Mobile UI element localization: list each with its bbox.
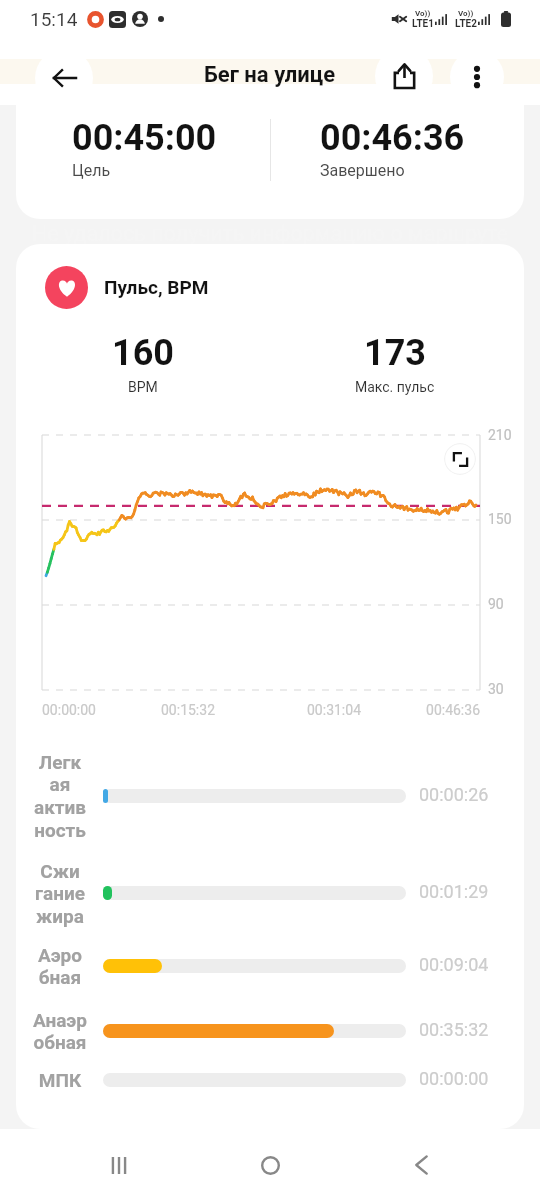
staticText: 00:46:36	[320, 117, 465, 159]
staticText: 00:00:00	[419, 1068, 489, 1089]
staticText: Аэро бная	[30, 944, 90, 988]
button[interactable]: More options	[450, 50, 504, 104]
staticText: Vo))	[415, 9, 431, 18]
staticText: 00:15:32	[148, 702, 228, 718]
staticText: LTE2	[455, 18, 477, 30]
staticText: Анаэр обная	[30, 1009, 90, 1053]
staticText: 00:09:04	[419, 954, 489, 975]
staticText: Цель	[72, 161, 111, 180]
staticText: Завершено	[320, 161, 405, 180]
staticText: 00:00:00	[42, 702, 122, 718]
staticText: LTE1	[412, 18, 434, 30]
staticText: 00:35:32	[419, 1019, 489, 1040]
staticText: Макс. пульс	[355, 379, 435, 395]
staticText: 160	[112, 332, 174, 374]
staticText: Пульс, BPM	[104, 276, 209, 298]
staticText: 90	[488, 596, 504, 612]
button[interactable]: Пульс, BPM	[45, 265, 209, 309]
staticText: 00:01:29	[419, 881, 489, 902]
button[interactable]: Home	[238, 1133, 302, 1197]
staticText: 00:45:00	[72, 117, 217, 159]
button[interactable]: Back	[389, 1133, 453, 1197]
staticText: BPM	[128, 379, 158, 395]
staticText: 150	[488, 511, 512, 527]
staticText: 00:31:04	[294, 702, 374, 718]
staticText: 00:46:36	[400, 702, 480, 718]
button[interactable]: Back	[35, 49, 93, 107]
staticText: Сжи гание жира	[30, 860, 90, 927]
staticText: Vo))	[458, 9, 474, 18]
button[interactable]: Expand chart	[444, 443, 476, 475]
staticText: 15:14	[30, 8, 78, 30]
staticText: Бег на улице	[204, 62, 336, 87]
staticText: 210	[488, 427, 512, 443]
staticText: 30	[488, 681, 504, 697]
button[interactable]: Recents	[87, 1133, 151, 1197]
button[interactable]: Share	[375, 47, 433, 105]
staticText: 173	[364, 332, 426, 374]
staticText: Легк ая актив ность	[30, 751, 90, 841]
staticText: МПК	[30, 1069, 90, 1091]
staticText: 00:00:26	[419, 784, 489, 805]
